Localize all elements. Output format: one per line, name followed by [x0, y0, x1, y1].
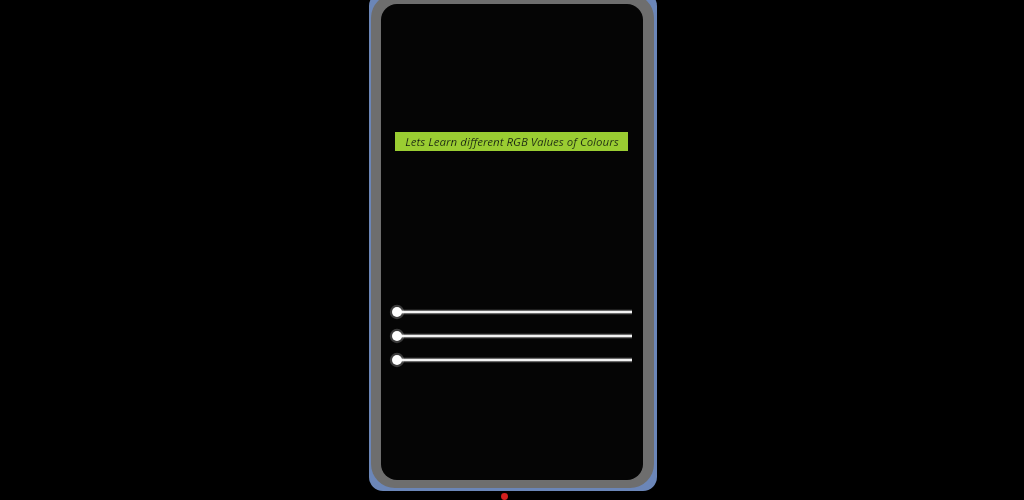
button[interactable]: Lets Learn different RGB Values of Colou…: [395, 132, 628, 151]
button[interactable]: Blue value slider: [391, 348, 636, 372]
button[interactable]: Green value slider: [391, 324, 636, 348]
button[interactable]: Red value slider: [391, 300, 636, 324]
staticText: Lets Learn different RGB Values of Colou…: [405, 134, 619, 150]
